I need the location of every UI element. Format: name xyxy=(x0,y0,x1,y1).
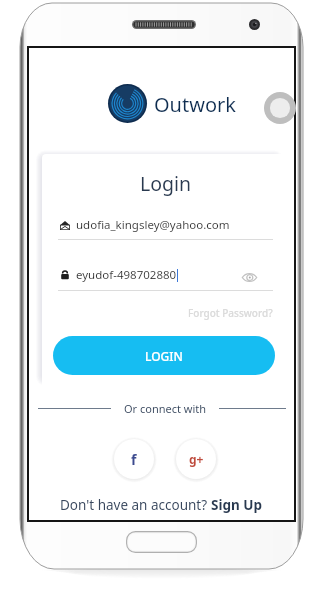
button[interactable]: Sign Up xyxy=(211,496,263,514)
button[interactable]: LOGIN xyxy=(53,336,275,375)
staticText: Or connect with xyxy=(111,401,219,416)
staticText: Don't have an account? xyxy=(60,496,211,514)
button[interactable]: Facebook xyxy=(114,439,154,479)
staticText: udofia_kingsley@yahoo.com xyxy=(76,217,230,233)
other: Show password xyxy=(242,272,257,283)
staticText: g+ xyxy=(189,451,204,467)
staticText: Outwork xyxy=(154,91,236,118)
staticText: f xyxy=(131,450,137,469)
staticText: eyudof-498702880 xyxy=(76,267,177,283)
button[interactable]: Google Plus xyxy=(176,439,216,479)
staticText: LOGIN xyxy=(145,348,183,364)
button[interactable]: Forgot Password? xyxy=(188,306,273,320)
staticText: Login xyxy=(42,170,289,197)
